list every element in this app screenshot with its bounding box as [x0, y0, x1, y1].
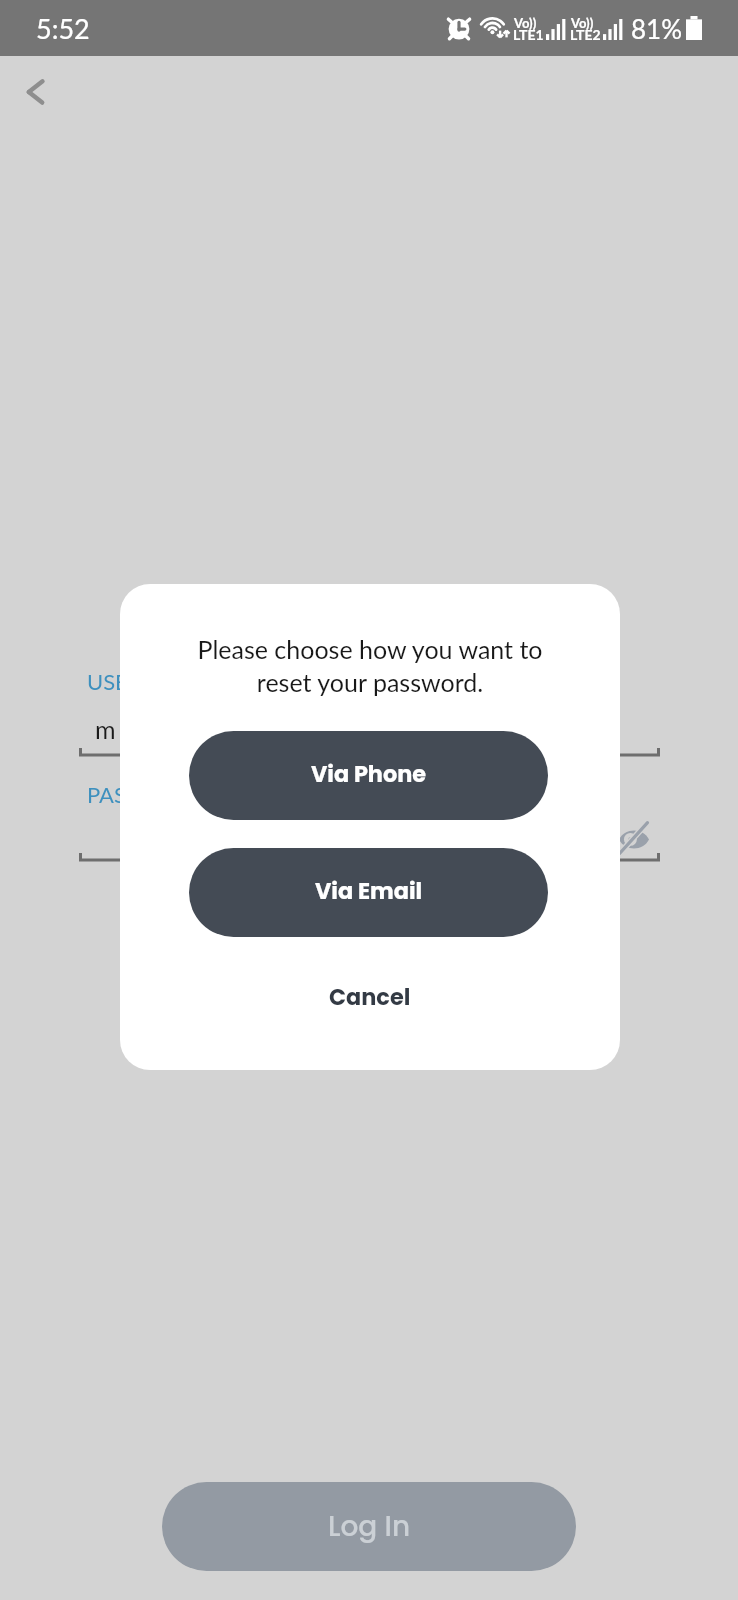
staticText: Log In: [328, 1507, 411, 1546]
staticText: 5:52: [36, 12, 90, 44]
staticText: USERNAME: [87, 668, 207, 694]
staticText: Via Email: [315, 875, 423, 906]
staticText: m: [95, 714, 116, 744]
staticText: PASSWORD: [87, 781, 209, 807]
staticText: LTE1: [513, 26, 544, 43]
staticText: Via Phone: [311, 758, 427, 789]
staticText: Vo)): [514, 15, 537, 31]
button[interactable]: Log In: [162, 1482, 576, 1571]
staticText: LTE2: [570, 26, 601, 43]
staticText: Please choose how you want to reset your…: [186, 634, 554, 697]
button[interactable]: Cancel: [280, 966, 460, 1026]
button[interactable]: Back: [8, 68, 64, 124]
staticText: 81%: [631, 13, 682, 44]
staticText: Cancel: [329, 981, 411, 1012]
staticText: Vo)): [571, 15, 594, 31]
button[interactable]: Via Phone: [189, 731, 548, 820]
button[interactable]: Via Email: [189, 848, 548, 937]
button[interactable]: Toggle password visibility: [604, 811, 664, 871]
